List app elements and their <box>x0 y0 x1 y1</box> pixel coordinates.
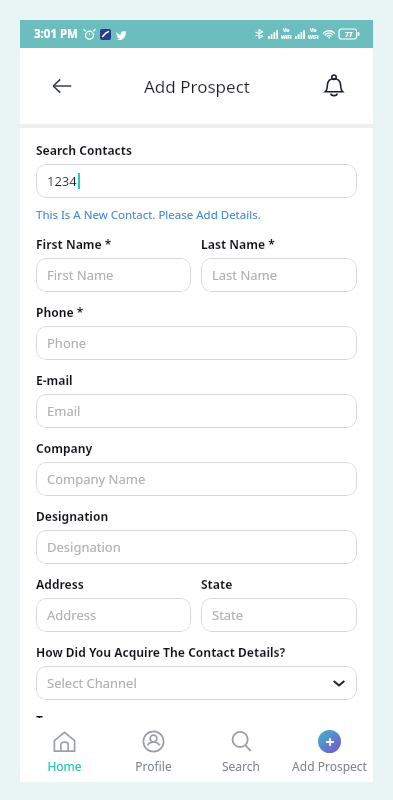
staticText: How Did You Acquire The Contact Details? <box>36 644 286 660</box>
button[interactable]: 1234 <box>36 164 357 198</box>
staticText: 3:01 PM <box>34 26 78 42</box>
staticText: Tag <box>36 712 57 728</box>
staticText: First Name * <box>36 236 112 252</box>
button[interactable]: Home <box>20 718 109 782</box>
button[interactable]: Address <box>36 598 191 632</box>
button[interactable]: Add Prospect <box>285 718 373 782</box>
staticText: E-mail <box>36 372 73 388</box>
staticText: State <box>201 576 233 592</box>
button[interactable]: Last Name <box>201 258 357 292</box>
staticText: 1234 <box>47 172 77 190</box>
staticText: Company <box>36 440 93 456</box>
button[interactable] <box>36 734 357 768</box>
button[interactable]: Select Channel <box>36 666 357 700</box>
button[interactable]: Search <box>197 718 285 782</box>
button[interactable]: Back <box>42 66 82 106</box>
staticText: Email <box>47 402 81 420</box>
staticText: First Name <box>47 266 114 284</box>
button[interactable]: Phone <box>36 326 357 360</box>
staticText: Profile <box>135 758 172 774</box>
staticText: State <box>212 606 244 624</box>
staticText: Home <box>47 758 82 774</box>
staticText: Phone <box>47 334 87 352</box>
staticText: Add Prospect <box>144 75 250 98</box>
button[interactable]: First Name <box>36 258 191 292</box>
button[interactable]: Profile <box>109 718 197 782</box>
staticText: Address <box>47 606 97 624</box>
staticText: WiFi <box>281 34 292 41</box>
button[interactable]: Notifications <box>313 65 355 107</box>
staticText: Designation <box>36 508 109 524</box>
staticText: This Is A New Contact. Please Add Detail… <box>36 207 261 223</box>
staticText: Vo <box>283 27 290 34</box>
button[interactable]: Designation <box>36 530 357 564</box>
staticText: Vo <box>310 27 317 34</box>
staticText: Last Name * <box>201 236 275 252</box>
button[interactable]: Company Name <box>36 462 357 496</box>
staticText: Add Prospect <box>292 758 367 774</box>
staticText: Phone * <box>36 304 84 320</box>
staticText: Search <box>222 758 260 774</box>
staticText: WiFi <box>308 34 319 41</box>
button[interactable]: State <box>201 598 357 632</box>
button[interactable]: Email <box>36 394 357 428</box>
staticText: Last Name <box>212 266 278 284</box>
staticText: Select Channel <box>47 674 137 692</box>
staticText: Company Name <box>47 470 146 488</box>
staticText: Address <box>36 576 84 592</box>
staticText: 77 <box>345 30 353 39</box>
staticText: Designation <box>47 538 121 556</box>
staticText: Search Contacts <box>36 142 133 158</box>
